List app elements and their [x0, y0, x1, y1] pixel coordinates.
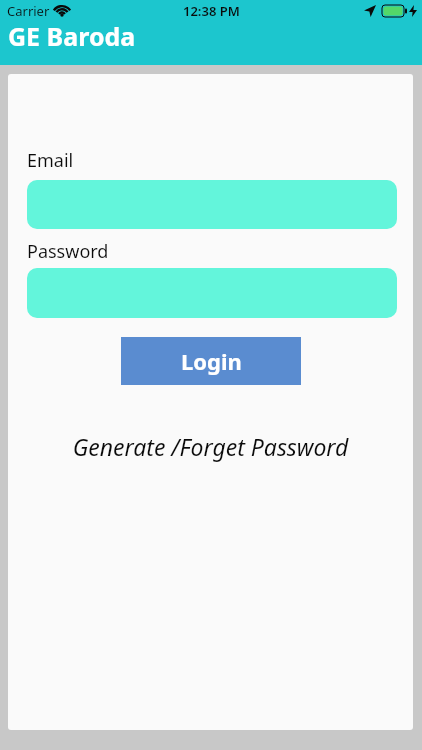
staticText: 12:38 PM: [183, 2, 240, 20]
staticText: Password: [27, 239, 109, 264]
button[interactable]: Generate /Forget Password: [8, 431, 413, 462]
staticText: Carrier: [7, 2, 50, 20]
button[interactable]: [27, 268, 397, 318]
staticText: Login: [181, 346, 242, 376]
staticText: GE Baroda: [8, 19, 136, 53]
staticText: Email: [27, 148, 74, 173]
button[interactable]: Login: [121, 337, 301, 385]
button[interactable]: [27, 180, 397, 229]
